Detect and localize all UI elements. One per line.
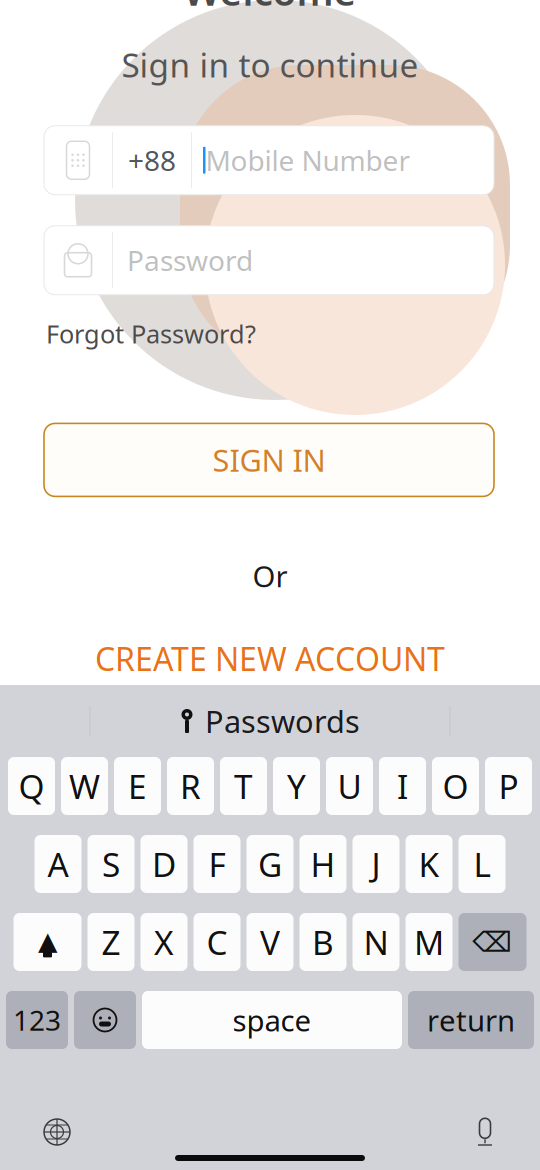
staticText: A [47,842,68,886]
button[interactable]: O [432,757,479,815]
staticText: ⌫ [472,926,512,958]
button[interactable]: S [87,835,134,893]
staticText: S [102,842,120,886]
button[interactable]: I [379,757,426,815]
staticText: Forgot Password? [46,317,256,350]
button[interactable]: space [142,991,402,1049]
button[interactable]: J [352,835,399,893]
staticText: Z [101,920,120,964]
button[interactable]: Delete [458,913,526,971]
staticText: return [427,1000,515,1039]
button[interactable]: K [405,835,452,893]
button[interactable]: H [299,835,346,893]
staticText: M [414,920,444,964]
button[interactable]: Y [273,757,320,815]
staticText: B [312,920,334,964]
staticText: G [258,842,282,886]
button[interactable]: B [299,913,346,971]
staticText: D [152,842,176,886]
staticText: Or [252,556,287,595]
button[interactable]: T [220,757,267,815]
button[interactable]: Z [87,913,134,971]
staticText: Welcome [183,0,356,16]
button[interactable]: R [167,757,214,815]
button[interactable]: P [485,757,532,815]
staticText: 123 [13,1001,61,1039]
staticText: Passwords [205,701,360,741]
button[interactable]: U [326,757,373,815]
staticText: SIGN IN [212,439,325,480]
staticText: E [128,764,147,808]
staticText: V [260,920,280,964]
button[interactable]: CREATE NEW ACCOUNT [95,637,445,680]
staticText: space [232,1000,311,1039]
button[interactable]: Dictation [474,1117,496,1147]
staticText: X [154,920,174,964]
staticText: +88 [128,142,176,179]
staticText: U [337,764,361,808]
staticText: L [473,842,490,886]
staticText: Password [127,242,253,279]
button[interactable]: SIGN IN [44,423,494,496]
button[interactable]: X [140,913,187,971]
button[interactable]: V [246,913,293,971]
button[interactable]: D [140,835,187,893]
staticText: T [234,764,253,808]
staticText: I [397,764,408,808]
staticText: K [418,842,439,886]
staticText: R [180,764,201,808]
button[interactable]: Shift [13,913,81,971]
button[interactable]: 123 [6,991,68,1049]
staticText: Sign in to continue [121,42,418,87]
button[interactable]: Passwords [180,701,360,741]
button[interactable]: N [352,913,399,971]
staticText: J [371,842,380,886]
button[interactable]: return [408,991,534,1049]
staticText: CREATE NEW ACCOUNT [95,637,445,680]
button[interactable]: G [246,835,293,893]
staticText: O [442,764,468,808]
button[interactable]: Next keyboard [44,1119,70,1145]
staticText: H [310,842,335,886]
staticText: N [363,920,388,964]
staticText: W [69,764,100,808]
button[interactable]: M [405,913,452,971]
staticText: ▲ [38,927,57,955]
button[interactable]: Forgot Password? [46,317,256,350]
button[interactable]: A [34,835,81,893]
button[interactable]: W [61,757,108,815]
staticText: C [206,920,227,964]
staticText: F [208,842,225,886]
button[interactable]: C [193,913,240,971]
button[interactable]: Q [8,757,55,815]
staticText: Mobile Number [205,142,410,179]
staticText: Y [287,764,306,808]
button[interactable]: Emoji [74,991,136,1049]
button[interactable]: E [114,757,161,815]
button[interactable]: L [458,835,505,893]
button[interactable]: F [193,835,240,893]
staticText: Q [18,764,44,808]
staticText: P [498,764,518,808]
